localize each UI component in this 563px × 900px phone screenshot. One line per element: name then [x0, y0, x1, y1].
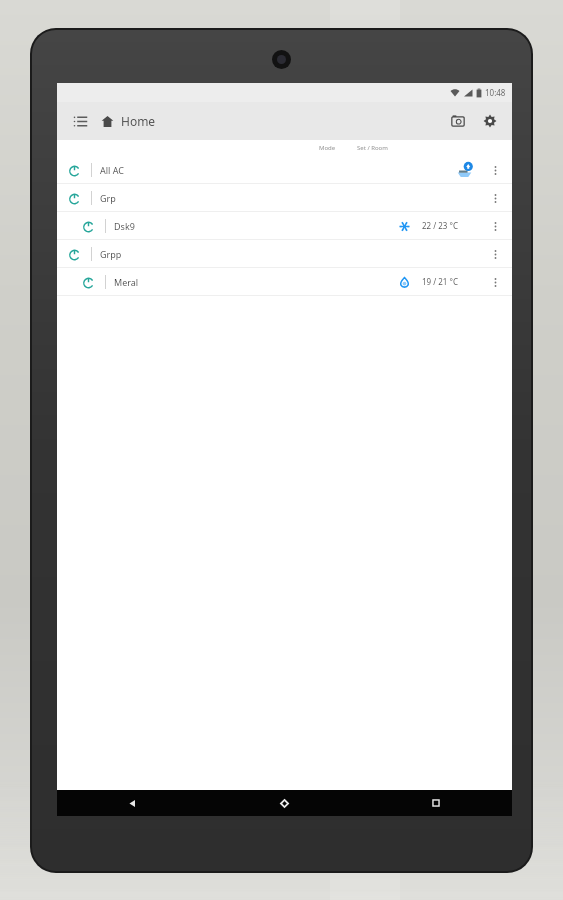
button[interactable]: Power All AC	[57, 156, 512, 183]
button[interactable]: Power Grpp	[57, 240, 512, 267]
button[interactable]: Power All AC	[63, 159, 85, 181]
button[interactable]: Recents	[360, 790, 512, 816]
button[interactable]: Power Dsk9	[77, 215, 99, 237]
staticText: 10:48	[485, 87, 506, 98]
staticText: Home	[121, 113, 156, 129]
staticText: Grpp	[100, 248, 122, 260]
button[interactable]: More options	[484, 187, 506, 209]
button[interactable]: Menu	[65, 106, 95, 136]
button[interactable]: Home	[101, 113, 156, 129]
staticText: Mode	[319, 144, 336, 152]
button[interactable]: Screenshot	[442, 105, 474, 137]
staticText: Grp	[100, 192, 116, 204]
button[interactable]: Power Grpp	[63, 243, 85, 265]
button[interactable]: Update	[452, 158, 476, 182]
staticText: 22 / 23 °C	[422, 220, 458, 231]
staticText: Set / Room	[357, 144, 388, 152]
button[interactable]: Back	[57, 790, 208, 816]
button[interactable]: Power Grp	[57, 184, 512, 211]
button[interactable]: Settings	[474, 105, 506, 137]
staticText: 19 / 21 °C	[422, 276, 458, 287]
button[interactable]: Home	[208, 790, 360, 816]
button[interactable]: More options	[484, 271, 506, 293]
staticText: Dsk9	[114, 220, 135, 232]
staticText: All AC	[100, 164, 124, 176]
button[interactable]: Power Grp	[63, 187, 85, 209]
button[interactable]: Power Dsk9	[57, 212, 512, 239]
staticText: Meral	[114, 276, 139, 288]
button[interactable]: More options	[484, 243, 506, 265]
button[interactable]: More options	[484, 159, 506, 181]
button[interactable]: Power Meral	[57, 268, 512, 295]
button[interactable]: More options	[484, 215, 506, 237]
button[interactable]: Power Meral	[77, 271, 99, 293]
